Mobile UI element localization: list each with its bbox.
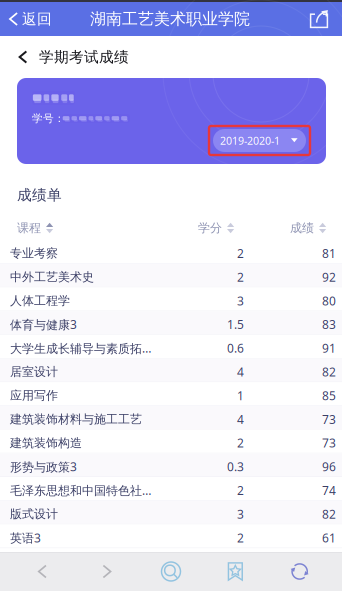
button[interactable]: 居室设计 [0, 358, 342, 382]
staticText: 形势与政策3 [10, 459, 77, 475]
staticText: 课程 [17, 221, 41, 235]
button[interactable]: 大学生成长辅导与素质拓… [0, 335, 342, 358]
button[interactable]: 课程 [17, 216, 53, 240]
button[interactable]: 学分 [198, 216, 234, 240]
button[interactable]: 英语3 [0, 524, 342, 548]
button[interactable]: 体育与健康3 [0, 311, 342, 335]
button[interactable]: 建筑装饰构造 [0, 430, 342, 453]
staticText: 体育与健康3 [10, 316, 77, 332]
staticText: 学期考试成绩 [39, 48, 129, 66]
staticText: 61 [322, 530, 336, 546]
staticText: 2019-2020-1 [220, 133, 280, 148]
staticText: 2 [237, 245, 244, 261]
staticText: 91 [322, 340, 336, 356]
staticText: 0.6 [227, 340, 244, 356]
button[interactable]: 建筑装饰材料与施工工艺 [0, 406, 342, 430]
button[interactable]: 学期考试成绩 [0, 37, 145, 77]
button[interactable]: 毛泽东思想和中国特色社… [0, 477, 342, 501]
staticText: 85 [322, 388, 336, 403]
staticText: 专业考察 [10, 246, 58, 261]
staticText: 中外工艺美术史 [10, 270, 94, 284]
button[interactable]: 2019-2020-1 [213, 129, 306, 152]
staticText: 2 [237, 435, 244, 451]
button[interactable]: 成绩 [290, 216, 326, 240]
staticText: 96 [322, 459, 336, 475]
button[interactable]: Share [302, 2, 336, 36]
staticText: 73 [322, 411, 336, 427]
staticText: 人体工程学 [10, 293, 70, 308]
button[interactable]: 人体工程学 [0, 287, 342, 311]
button[interactable]: 版式设计 [0, 501, 342, 524]
staticText: 4 [237, 411, 244, 427]
staticText: 英语3 [10, 530, 41, 546]
staticText: 建筑装饰构造 [10, 436, 82, 450]
staticText: 应用写作 [10, 388, 58, 403]
staticText: 学分 [198, 221, 222, 235]
staticText: 学号： [32, 112, 65, 125]
button[interactable]: 专业考察 [0, 240, 342, 264]
staticText: 1 [237, 388, 244, 403]
staticText: 82 [322, 364, 336, 380]
staticText: 1.5 [227, 316, 244, 332]
staticText: 2 [237, 269, 244, 285]
staticText: 湖南工艺美术职业学院 [90, 9, 250, 29]
button[interactable]: 应用写作 [0, 382, 342, 406]
staticText: 0.3 [227, 459, 244, 475]
staticText: 74 [322, 482, 336, 498]
staticText: 版式设计 [10, 507, 58, 521]
staticText: 成绩单 [17, 186, 62, 204]
staticText: 82 [322, 506, 336, 522]
staticText: 建筑装饰材料与施工工艺 [10, 412, 142, 427]
button[interactable]: 返回 [2, 2, 56, 36]
staticText: 毛泽东思想和中国特色社… [10, 482, 151, 498]
staticText: 居室设计 [10, 364, 58, 379]
button[interactable]: Back [20, 552, 64, 590]
staticText: 81 [322, 245, 336, 261]
staticText: 3 [237, 293, 244, 309]
staticText: 大学生成长辅导与素质拓… [10, 340, 151, 356]
button[interactable]: 中外工艺美术史 [0, 264, 342, 287]
staticText: 成绩 [290, 221, 314, 235]
staticText: 2 [237, 530, 244, 546]
button[interactable]: Refresh [278, 552, 322, 590]
staticText: 73 [322, 435, 336, 451]
staticText: 返回 [22, 10, 52, 28]
staticText: 3 [237, 506, 244, 522]
button[interactable]: 形势与政策3 [0, 453, 342, 477]
staticText: 92 [322, 269, 336, 285]
button[interactable]: Search [149, 552, 193, 590]
button[interactable]: Forward [85, 552, 129, 590]
staticText: 83 [322, 316, 336, 332]
button[interactable]: Bookmarks [213, 552, 257, 590]
staticText: 2 [237, 482, 244, 498]
staticText: 80 [322, 293, 336, 309]
staticText: 4 [237, 364, 244, 380]
